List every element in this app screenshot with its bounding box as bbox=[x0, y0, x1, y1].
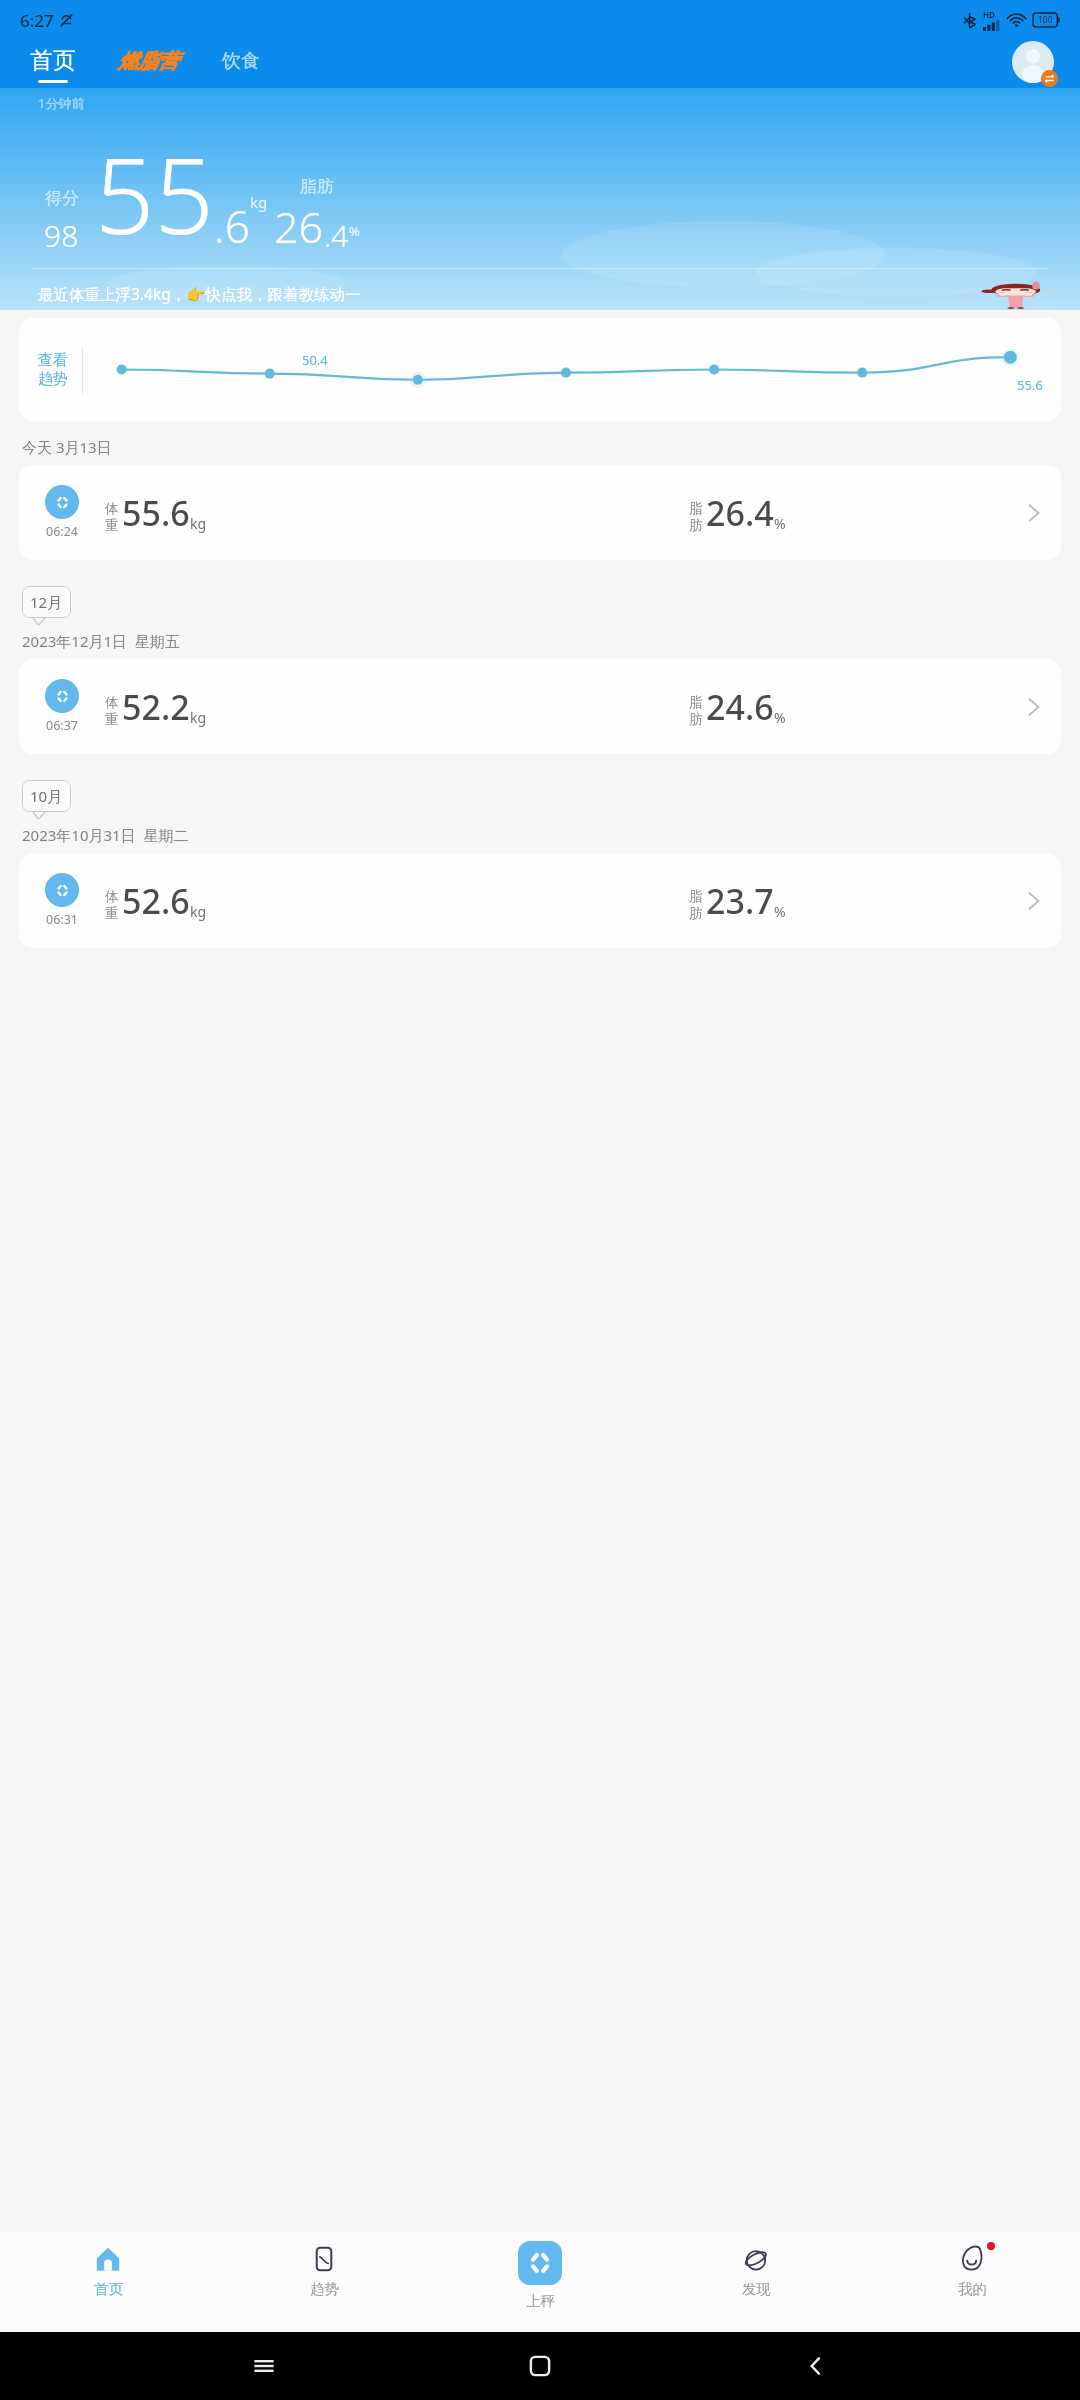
staticText: .4 bbox=[324, 215, 349, 256]
staticText: kg bbox=[250, 192, 268, 212]
staticText: 燃脂营 bbox=[118, 49, 178, 74]
staticText: 最近体重上浮3.4kg，👉快点我，跟着教练动一动 bbox=[38, 283, 363, 310]
staticText: .6 bbox=[214, 196, 250, 256]
button[interactable]: 上秤 bbox=[475, 2241, 605, 2332]
staticText: 55.6 bbox=[122, 490, 190, 536]
staticText: 我的 bbox=[958, 2280, 987, 2298]
other: Home bbox=[528, 2354, 552, 2378]
staticText: 23.7 bbox=[706, 878, 774, 924]
staticText: 肪 bbox=[689, 905, 703, 922]
staticText: 26 bbox=[274, 197, 324, 256]
button[interactable]: 趋势 bbox=[216, 2232, 432, 2332]
staticText: 06:37 bbox=[46, 717, 78, 734]
staticText: 发现 bbox=[742, 2280, 771, 2298]
button[interactable]: 我的 bbox=[864, 2232, 1080, 2332]
staticText: 肪 bbox=[689, 517, 703, 534]
button[interactable]: 饮食 bbox=[222, 49, 260, 79]
button[interactable]: 查看 bbox=[19, 318, 1061, 421]
staticText: 10月 bbox=[30, 786, 63, 806]
staticText: 重 bbox=[105, 711, 119, 728]
staticText: 饮食 bbox=[222, 49, 260, 73]
staticText: 肪 bbox=[689, 711, 703, 728]
button[interactable]: 06:37 bbox=[19, 659, 1061, 754]
staticText: 26.4 bbox=[706, 490, 774, 536]
button[interactable]: 06:31 bbox=[19, 853, 1061, 948]
staticText: 趋势 bbox=[38, 370, 68, 389]
staticText: % bbox=[774, 514, 786, 533]
staticText: 2023年12月1日 星期五 bbox=[22, 631, 180, 651]
staticText: 55.6 bbox=[1017, 376, 1043, 394]
staticText: 首页 bbox=[94, 2280, 123, 2298]
staticText: 06:24 bbox=[46, 523, 78, 540]
staticText: 2023年10月31日 星期二 bbox=[22, 825, 189, 845]
staticText: % bbox=[349, 222, 360, 240]
staticText: 52.6 bbox=[122, 878, 190, 924]
staticText: 上秤 bbox=[526, 2292, 555, 2310]
staticText: 98 bbox=[44, 215, 79, 256]
button[interactable]: 首页 bbox=[0, 2232, 216, 2332]
button[interactable]: 发现 bbox=[648, 2232, 864, 2332]
staticText: 24.6 bbox=[706, 684, 774, 730]
staticText: 首页 bbox=[30, 46, 76, 75]
staticText: 1分钟前 bbox=[38, 94, 85, 112]
other: Recents bbox=[252, 2354, 276, 2378]
staticText: 体 bbox=[105, 694, 119, 711]
staticText: 得分 bbox=[45, 188, 79, 209]
staticText: % bbox=[774, 708, 786, 727]
staticText: 今天 3月13日 bbox=[22, 437, 112, 457]
staticText: 06:31 bbox=[46, 911, 78, 928]
button[interactable]: 首页 bbox=[30, 46, 76, 83]
other: Back bbox=[804, 2354, 828, 2378]
staticText: 查看 bbox=[38, 351, 68, 370]
staticText: kg bbox=[190, 708, 207, 727]
staticText: 脂 bbox=[689, 888, 703, 905]
staticText: 12月 bbox=[30, 592, 63, 612]
staticText: 50.4 bbox=[302, 351, 328, 369]
staticText: kg bbox=[190, 902, 207, 921]
staticText: 脂肪 bbox=[300, 176, 334, 197]
staticText: 52.2 bbox=[122, 684, 190, 730]
staticText: % bbox=[774, 902, 786, 921]
staticText: 体 bbox=[105, 888, 119, 905]
button[interactable]: Switch user bbox=[1012, 41, 1058, 87]
staticText: 重 bbox=[105, 517, 119, 534]
staticText: kg bbox=[190, 514, 207, 533]
staticText: HD bbox=[983, 9, 995, 20]
staticText: 脂 bbox=[689, 500, 703, 517]
staticText: 6:27 bbox=[20, 9, 54, 32]
staticText: 体 bbox=[105, 500, 119, 517]
staticText: 脂 bbox=[689, 694, 703, 711]
staticText: 100 bbox=[1038, 14, 1053, 26]
button[interactable]: 06:24 bbox=[19, 465, 1061, 560]
staticText: 重 bbox=[105, 905, 119, 922]
button[interactable]: 燃脂营 bbox=[118, 49, 178, 80]
staticText: 趋势 bbox=[310, 2280, 339, 2298]
staticText: 55 bbox=[95, 123, 214, 265]
